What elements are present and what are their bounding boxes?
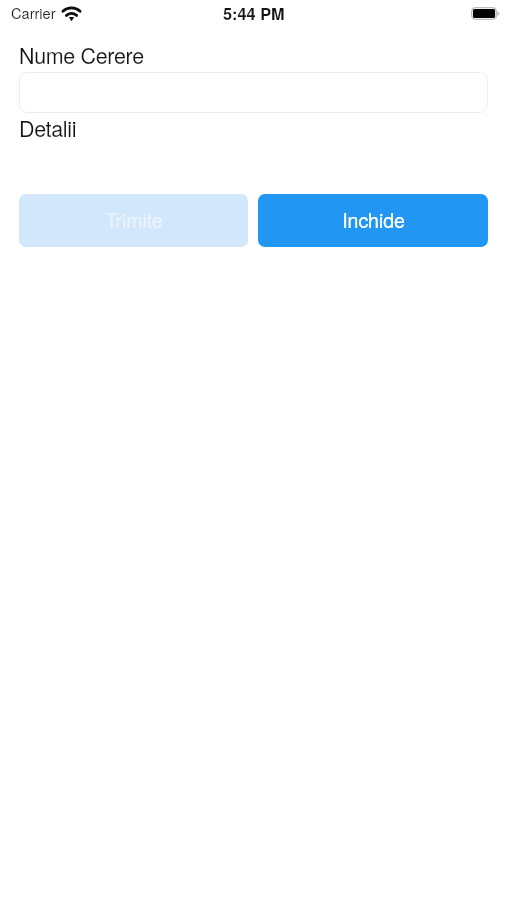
staticText: Inchide bbox=[342, 205, 405, 233]
button[interactable]: Trimite bbox=[19, 194, 248, 247]
staticText: Trimite bbox=[105, 205, 163, 233]
staticText: Detalii bbox=[19, 112, 77, 143]
staticText: Nume Cerere bbox=[19, 39, 144, 70]
button[interactable]: Inchide bbox=[258, 194, 488, 247]
staticText: Carrier bbox=[11, 2, 56, 23]
button[interactable]: Nume Cerere input field bbox=[19, 72, 488, 113]
staticText: 5:44 PM bbox=[223, 2, 285, 25]
